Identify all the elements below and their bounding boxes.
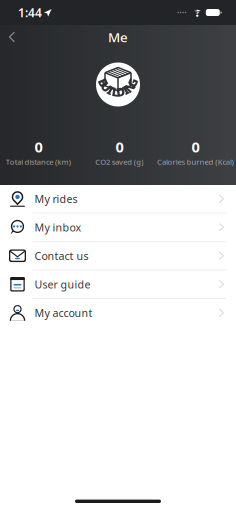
staticText: 0	[34, 137, 42, 157]
staticText: 0	[115, 137, 123, 157]
staticText: I	[123, 82, 128, 98]
staticText: My account	[34, 306, 92, 320]
button[interactable]: My account	[0, 299, 236, 327]
staticText: G	[128, 74, 137, 90]
button[interactable]: User guide	[0, 270, 236, 299]
staticText: Calories burned (Kcal)	[148, 155, 236, 168]
button[interactable]: Contact us	[0, 242, 236, 270]
staticText: My inbox	[34, 220, 81, 234]
staticText: Me	[108, 28, 128, 46]
staticText: I	[108, 82, 113, 98]
button[interactable]: My rides	[0, 185, 236, 213]
staticText: Total distance (km)	[0, 155, 78, 168]
button[interactable]: Back	[0, 25, 27, 49]
staticText: U	[102, 79, 111, 95]
staticText: User guide	[34, 277, 90, 291]
staticText: Contact us	[34, 249, 88, 263]
staticText: 0	[191, 137, 199, 157]
staticText: L	[112, 84, 119, 100]
staticText: B	[99, 74, 107, 90]
staticText: CO2 saved (g)	[90, 155, 149, 168]
button[interactable]: My inbox	[0, 213, 236, 242]
staticText: My rides	[34, 192, 77, 206]
staticText: 1:44	[18, 4, 42, 20]
staticText: D	[116, 84, 125, 100]
staticText: N	[125, 79, 135, 95]
